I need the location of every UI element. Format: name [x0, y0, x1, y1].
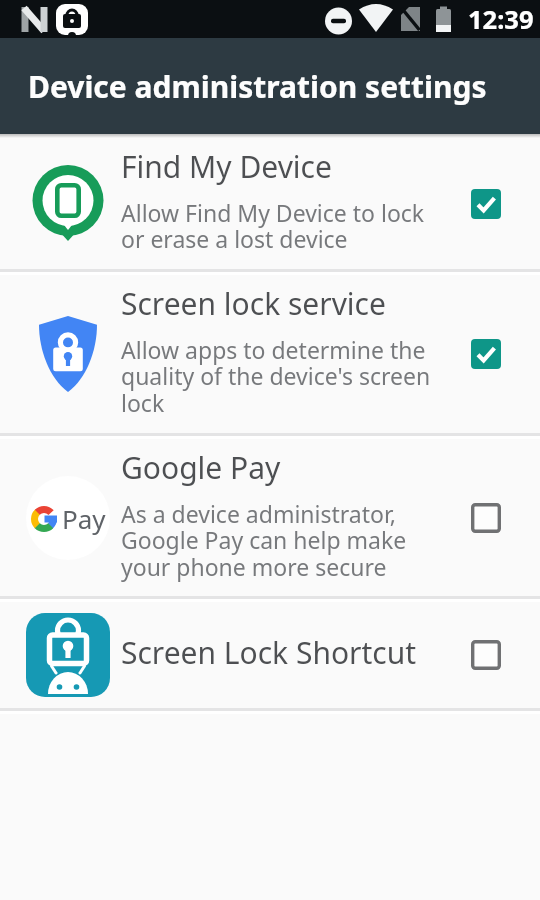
button[interactable]: Pay: [0, 439, 540, 596]
staticText: Find My Device: [121, 146, 332, 187]
staticText: Device administration settings: [28, 66, 487, 107]
staticText: Screen Lock Shortcut: [121, 632, 417, 673]
staticText: Pay: [62, 501, 106, 536]
staticText: Google Pay: [121, 447, 281, 488]
button[interactable]: [471, 640, 501, 670]
button[interactable]: [471, 339, 501, 369]
staticText: Screen lock service: [121, 283, 386, 324]
button[interactable]: [471, 189, 501, 219]
staticText: Allow Find My Device to lock or erase a …: [121, 197, 425, 255]
button[interactable]: Find My Device: [0, 138, 540, 269]
button[interactable]: [471, 503, 501, 533]
staticText: As a device administrator, Google Pay ca…: [121, 498, 407, 583]
staticText: 12:39: [468, 2, 534, 37]
button[interactable]: Screen lock service: [0, 275, 540, 433]
staticText: Allow apps to determine the quality of t…: [121, 334, 431, 419]
button[interactable]: Screen Lock Shortcut: [0, 602, 540, 708]
